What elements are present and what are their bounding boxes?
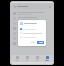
button[interactable]	[13, 26, 51, 31]
button[interactable]	[30, 41, 36, 44]
button[interactable]	[13, 16, 51, 21]
button[interactable]: Menu	[13, 5, 16, 8]
button[interactable]	[20, 31, 44, 35]
button[interactable]	[13, 21, 51, 26]
button[interactable]	[13, 36, 51, 41]
button[interactable]: Activity	[33, 55, 41, 62]
button[interactable]: Profile	[43, 55, 51, 62]
button[interactable]	[20, 35, 44, 39]
button[interactable]	[13, 11, 51, 16]
button[interactable]	[13, 41, 51, 46]
button[interactable]	[20, 27, 44, 31]
button[interactable]: Home	[13, 55, 21, 62]
button[interactable]	[37, 41, 44, 44]
button[interactable]	[13, 31, 51, 36]
button[interactable]: Explore	[23, 55, 31, 62]
button[interactable]: Search	[48, 5, 51, 8]
